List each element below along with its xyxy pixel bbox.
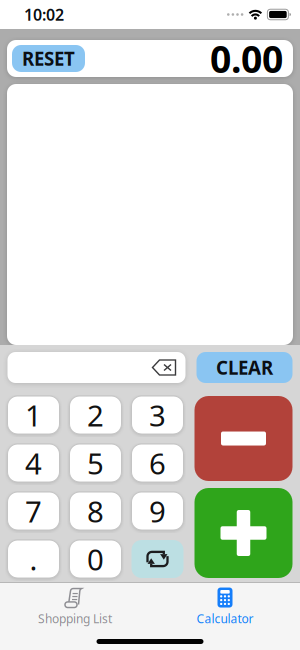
button[interactable]: 9 (131, 492, 183, 530)
button[interactable]: 5 (69, 444, 121, 482)
staticText: 0.00 (210, 34, 283, 83)
staticText: . (29, 539, 37, 578)
button[interactable]: 4 (7, 444, 59, 482)
button[interactable]: 8 (69, 492, 121, 530)
staticText: 8 (87, 491, 104, 530)
staticText: 7 (25, 491, 42, 530)
staticText: CLEAR (216, 355, 273, 380)
button[interactable]: Calculator (150, 587, 300, 626)
staticText: 9 (149, 491, 166, 530)
button[interactable]: CLEAR (196, 352, 292, 383)
button[interactable]: 1 (7, 396, 59, 434)
button[interactable]: Shopping List (0, 587, 150, 626)
button[interactable]: Subtract (194, 396, 292, 481)
staticText: 1 (25, 395, 42, 434)
staticText: Calculator (196, 610, 253, 626)
button[interactable]: 7 (7, 492, 59, 530)
button[interactable]: 2 (69, 396, 121, 434)
button[interactable]: Add (194, 488, 292, 578)
button[interactable]: Delete (151, 359, 185, 376)
staticText: RESET (22, 46, 75, 71)
button[interactable]: Swap (131, 540, 183, 578)
button[interactable]: RESET (12, 45, 85, 72)
staticText: Shopping List (38, 610, 112, 626)
staticText: 10:02 (24, 4, 64, 25)
button[interactable]: . (7, 540, 59, 578)
staticText: 0 (87, 539, 104, 578)
staticText: 3 (149, 395, 166, 434)
button[interactable]: 6 (131, 444, 183, 482)
staticText: 5 (87, 443, 104, 482)
staticText: 4 (25, 443, 42, 482)
button[interactable]: 0 (69, 540, 121, 578)
button[interactable]: 3 (131, 396, 183, 434)
staticText: 6 (149, 443, 166, 482)
staticText: 2 (87, 395, 104, 434)
